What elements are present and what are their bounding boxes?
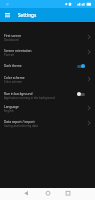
- staticText: Color scheme: [4, 76, 25, 80]
- button[interactable]: Back: [19, 188, 35, 200]
- staticText: Saving and restoring data: [4, 124, 38, 128]
- staticText: Portrait: [4, 53, 14, 57]
- staticText: English: [4, 109, 14, 113]
- button[interactable]: Home: [40, 188, 56, 200]
- staticText: Language: [4, 105, 19, 109]
- button[interactable]: Language: [0, 102, 95, 117]
- staticText: Color scheme: [4, 80, 22, 84]
- staticText: Screen orientation: [4, 49, 32, 53]
- button[interactable]: Open navigation menu: [2, 8, 13, 22]
- button[interactable]: Dark theme: [0, 61, 95, 73]
- staticText: Dashboard: [4, 38, 19, 42]
- staticText: Settings: [18, 12, 37, 18]
- button[interactable]: First screen: [0, 31, 95, 46]
- staticText: Application running in the background: [4, 96, 55, 100]
- staticText: Run in background: [4, 92, 33, 96]
- button[interactable]: Screen orientation: [0, 46, 95, 61]
- staticText: First screen: [4, 34, 22, 38]
- button[interactable]: Recent apps: [60, 188, 76, 200]
- button[interactable]: Run in background: [0, 89, 95, 104]
- button[interactable]: Color scheme: [0, 73, 95, 88]
- staticText: Dark theme: [4, 64, 22, 68]
- staticText: Data export / import: [4, 120, 35, 124]
- button[interactable]: Data export / import: [0, 117, 95, 132]
